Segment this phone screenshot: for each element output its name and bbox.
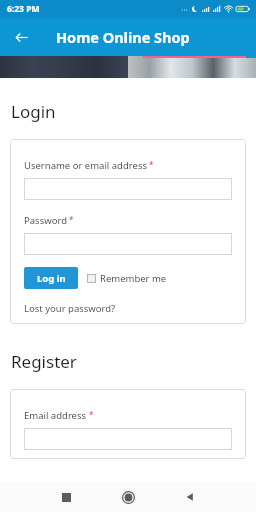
staticText: Lost your password? bbox=[24, 302, 116, 315]
staticText: Log in bbox=[37, 272, 66, 285]
button[interactable] bbox=[24, 428, 232, 450]
button[interactable] bbox=[24, 178, 232, 200]
staticText: * bbox=[69, 214, 74, 225]
button[interactable]: Recent apps bbox=[35, 482, 97, 512]
button[interactable]: Log in bbox=[24, 267, 78, 289]
staticText: Password bbox=[24, 214, 67, 227]
button[interactable]: Home bbox=[97, 482, 159, 512]
staticText: Home Online Shop bbox=[56, 27, 190, 47]
staticText: * bbox=[89, 409, 94, 420]
staticText: 6:23 PM bbox=[7, 3, 40, 15]
staticText: Remember me bbox=[100, 272, 167, 285]
staticText: Email address bbox=[24, 409, 87, 422]
staticText: * bbox=[149, 159, 154, 170]
button[interactable]: Remember me bbox=[87, 272, 167, 285]
staticText: Register bbox=[11, 350, 77, 373]
staticText: Login bbox=[11, 100, 56, 123]
button[interactable]: Back bbox=[159, 482, 221, 512]
button[interactable] bbox=[24, 233, 232, 255]
button[interactable]: Lost your password? bbox=[24, 302, 116, 315]
button[interactable]: Back bbox=[8, 24, 34, 50]
staticText: Username or email address bbox=[24, 159, 147, 172]
